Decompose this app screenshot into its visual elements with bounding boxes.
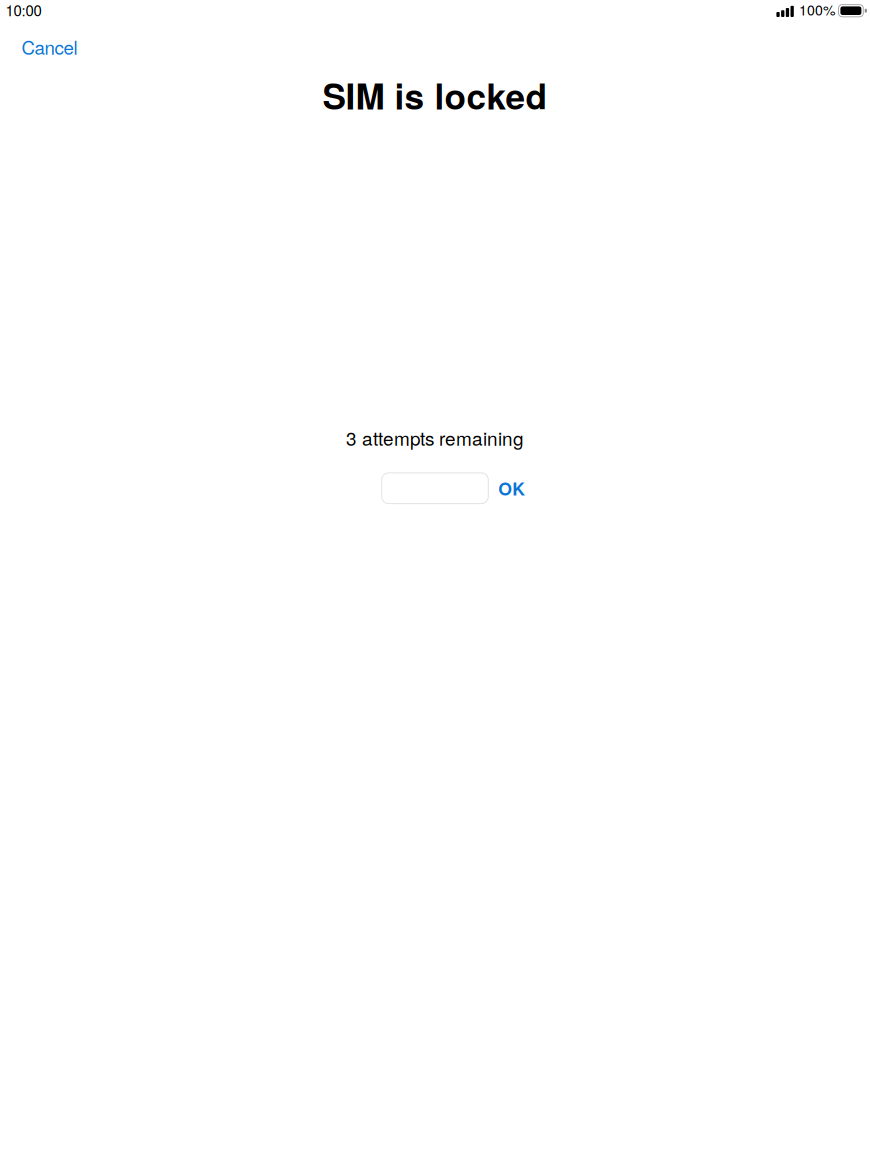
staticText: Cancel [21, 33, 77, 60]
staticText: 3 attempts remaining [346, 424, 524, 451]
button[interactable]: OK [498, 476, 525, 501]
staticText: SIM is locked [322, 70, 547, 120]
button[interactable]: Cancel [15, 29, 83, 64]
staticText: 10:00 [5, 0, 41, 20]
staticText: 100% [799, 0, 836, 20]
staticText: OK [498, 476, 525, 501]
button[interactable]: SIM PIN [382, 473, 488, 504]
